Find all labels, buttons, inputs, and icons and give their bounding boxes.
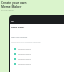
staticText: Template option [18,53,31,55]
staticText: Template option [18,48,31,50]
button[interactable]: Template option [11,46,64,51]
staticText: Meme Maker [11,26,25,29]
staticText: Select your template [11,36,28,38]
button[interactable]: Template option [11,56,64,61]
staticText: Choose from a list of popular templates [11,41,41,43]
staticText: by Chan Kapoor [1,9,14,11]
staticText: Template option [18,58,31,60]
button[interactable]: Template option [11,61,64,66]
staticText: Template option [18,63,31,65]
button[interactable]: Template option [11,51,64,56]
staticText: 9:41 [11,20,15,22]
staticText: Create your own Meme Maker [1,1,27,8]
